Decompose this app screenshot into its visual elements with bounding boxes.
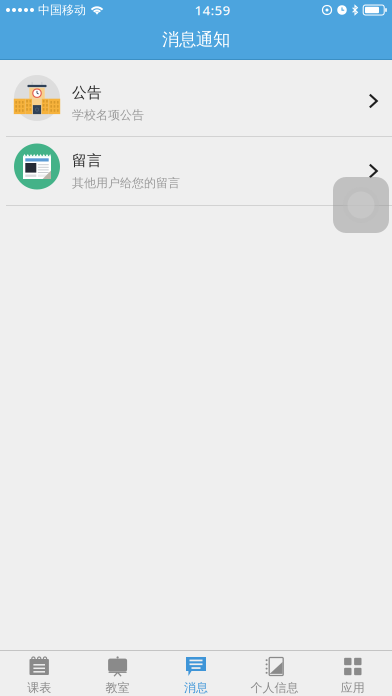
staticText: 消息 [184, 680, 208, 695]
staticText: 中国移动 [38, 3, 86, 17]
staticText: 课表 [27, 680, 51, 695]
staticText: 消息通知 [162, 29, 230, 50]
staticText: 其他用户给您的留言 [72, 176, 180, 190]
button[interactable]: 课表 [0, 651, 78, 696]
button[interactable]: 消息 [157, 651, 235, 696]
button[interactable]: AssistiveTouch [333, 177, 389, 233]
button[interactable]: 留言 [0, 137, 392, 205]
staticText: 公告 [72, 84, 102, 102]
staticText: 教室 [106, 680, 130, 695]
staticText: 个人信息 [250, 680, 298, 695]
button[interactable]: 个人信息 [235, 651, 314, 696]
staticText: 留言 [72, 152, 102, 170]
staticText: 学校名项公告 [72, 108, 144, 122]
staticText: 14:59 [194, 1, 230, 19]
staticText: 应用 [341, 680, 365, 695]
button[interactable]: 公告 [0, 60, 392, 136]
button[interactable]: 教室 [78, 651, 157, 696]
button[interactable]: 应用 [314, 651, 392, 696]
